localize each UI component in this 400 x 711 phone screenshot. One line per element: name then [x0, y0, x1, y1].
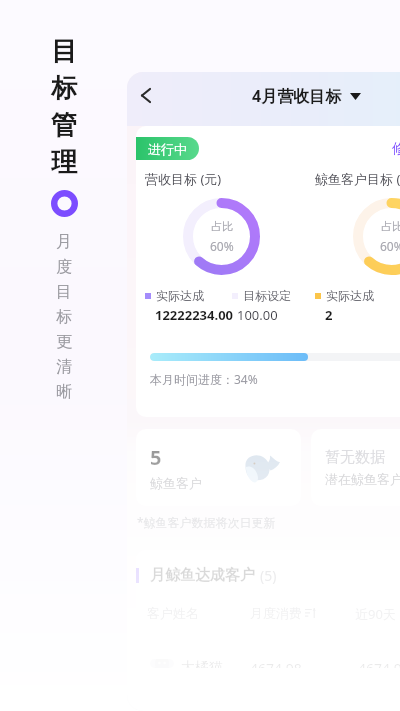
staticText: 月鲸鱼达成客户 — [150, 566, 255, 585]
staticText: 12222234.00 — [155, 306, 234, 324]
staticText: 鲸鱼客户 — [150, 475, 202, 491]
button[interactable]: 暂无数据 — [311, 429, 400, 506]
staticText: 近90天 — [355, 605, 396, 623]
staticText: 100.00 — [237, 306, 278, 324]
staticText: 目 — [51, 35, 77, 68]
staticText: 营收目标 (元) — [145, 170, 222, 188]
staticText: 4月营收目标 — [252, 85, 342, 107]
staticText: 2 — [325, 306, 333, 324]
staticText: (5) — [260, 566, 277, 585]
staticText: 客户姓名 — [147, 605, 250, 621]
staticText: 本月时间进度：34% — [150, 371, 258, 387]
button[interactable]: Back — [131, 80, 161, 110]
staticText: 5 — [150, 444, 162, 471]
button[interactable]: 大橘猫 — [150, 659, 400, 668]
staticText: 4674.98 — [250, 659, 358, 668]
staticText: 进行中 — [148, 141, 187, 157]
staticText: 清 — [56, 357, 72, 377]
staticText: 目 — [56, 282, 72, 302]
staticText: 占比 — [381, 219, 400, 233]
staticText: 目标设定 — [243, 288, 291, 303]
staticText: 月度消费 — [250, 605, 302, 621]
staticText: 大橘猫 — [181, 659, 223, 668]
staticText: 管 — [51, 109, 77, 142]
staticText: 占比 — [211, 219, 233, 233]
staticText: 潜在鲸鱼客户 — [325, 471, 400, 487]
staticText: 4674.9 — [358, 659, 400, 668]
staticText: 暂无数据 — [325, 448, 385, 467]
staticText: 标 — [51, 72, 77, 105]
staticText: 实际达成 — [156, 288, 204, 303]
staticText: 度 — [56, 257, 72, 277]
staticText: 标 — [56, 307, 72, 327]
button[interactable]: 修改 — [392, 140, 400, 158]
staticText: 60% — [210, 238, 234, 254]
staticText: 更 — [56, 332, 72, 352]
staticText: 晰 — [56, 382, 72, 402]
button[interactable]: 4月营收目标 — [252, 85, 361, 107]
staticText: *鲸鱼客户数据将次日更新 — [137, 514, 276, 530]
staticText: 理 — [51, 146, 77, 179]
button[interactable]: 5 — [136, 429, 301, 506]
staticText: 60% — [380, 238, 400, 254]
staticText: 鲸鱼客户目标 (人) — [315, 170, 400, 188]
staticText: 月 — [56, 232, 72, 252]
staticText: 实际达成 — [326, 288, 374, 303]
